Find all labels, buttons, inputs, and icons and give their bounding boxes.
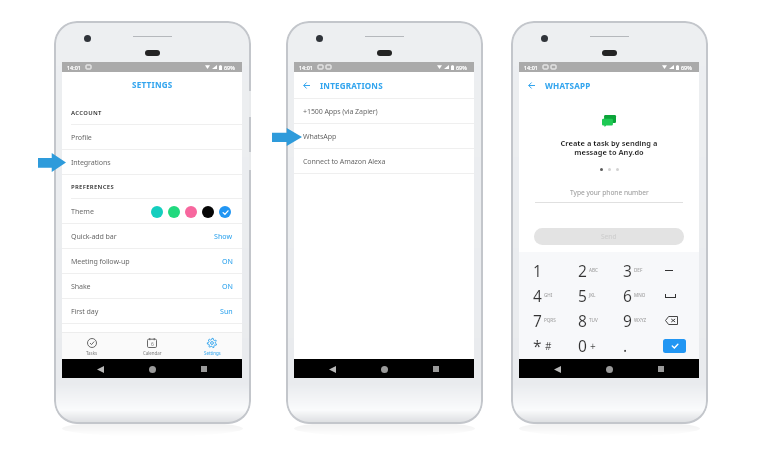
staticText: 14:01 — [524, 64, 538, 71]
button[interactable]: Back — [95, 364, 105, 374]
staticText: Profile — [71, 132, 92, 142]
staticText: 14:01 — [299, 64, 313, 71]
staticText: WXYZ — [634, 317, 647, 323]
staticText: SETTINGS — [132, 79, 173, 90]
staticText: Tasks — [86, 350, 98, 356]
staticText: 6 — [623, 285, 632, 306]
staticText: Show — [214, 231, 233, 241]
button[interactable]: Back — [302, 81, 311, 90]
button[interactable]: dash — [654, 258, 699, 283]
staticText: GHI — [544, 292, 553, 298]
staticText: 7 — [533, 310, 542, 331]
button[interactable]: Back — [327, 364, 337, 374]
button[interactable]: 9 — [609, 308, 654, 333]
button[interactable] — [185, 206, 197, 218]
button[interactable]: Home — [379, 364, 389, 374]
button[interactable]: Back — [527, 81, 536, 90]
button[interactable]: Home — [604, 364, 614, 374]
staticText: Meeting follow-up — [71, 256, 130, 266]
staticText: 6 — [151, 341, 154, 348]
staticText: Shake — [71, 281, 91, 291]
staticText: Sun — [220, 306, 233, 316]
staticText: 69% — [681, 64, 692, 71]
staticText: WhatsApp — [303, 131, 337, 141]
staticText: Calendar — [143, 350, 162, 356]
button[interactable]: WhatsApp — [294, 124, 474, 149]
staticText: ON — [222, 256, 233, 266]
staticText: + — [590, 339, 596, 353]
staticText: Theme — [71, 206, 94, 216]
button[interactable]: Connect to Amazon Alexa — [294, 149, 474, 174]
button[interactable]: 8 — [564, 308, 609, 333]
staticText: 3 — [623, 260, 632, 281]
button[interactable]: 6 — [609, 283, 654, 308]
button[interactable]: . — [609, 333, 654, 358]
staticText: MNO — [634, 292, 646, 298]
staticText: 69% — [224, 64, 235, 71]
button[interactable]: 7 — [519, 308, 564, 333]
staticText: 0 — [578, 335, 587, 356]
staticText: ACCOUNT — [71, 109, 102, 117]
staticText: DEF — [634, 267, 643, 273]
button[interactable]: space — [654, 283, 699, 308]
button[interactable]: Back — [552, 364, 562, 374]
button[interactable]: Confirm — [654, 333, 699, 358]
staticText: 8 — [578, 310, 587, 331]
staticText: WHATSAPP — [545, 80, 591, 91]
staticText: 9 — [623, 310, 632, 331]
staticText: . — [623, 335, 628, 356]
button[interactable]: Meeting follow-up — [62, 249, 242, 274]
staticText: 2 — [578, 260, 587, 281]
button[interactable]: 5 — [564, 283, 609, 308]
staticText: Quick-add bar — [71, 231, 117, 241]
staticText: Integrations — [71, 157, 111, 167]
button[interactable]: Quick-add bar — [62, 224, 242, 249]
staticText: * — [533, 335, 542, 356]
staticText: 4 — [533, 285, 542, 306]
staticText: Create a task by sending a message to An… — [519, 138, 699, 157]
button[interactable] — [219, 206, 231, 218]
staticText: First day — [71, 306, 99, 316]
button[interactable]: 2 — [564, 258, 609, 283]
button[interactable]: Integrations — [62, 150, 242, 175]
button[interactable]: Profile — [62, 125, 242, 150]
button[interactable]: Shake — [62, 274, 242, 299]
button[interactable]: Send — [534, 228, 684, 245]
button[interactable]: del — [654, 308, 699, 333]
button[interactable] — [151, 206, 163, 218]
button[interactable]: First day — [62, 299, 242, 324]
button[interactable]: 3 — [609, 258, 654, 283]
button[interactable]: Recents — [431, 364, 441, 374]
button[interactable]: Recents — [199, 364, 209, 374]
button[interactable]: 1 — [519, 258, 564, 283]
staticText: 1 — [533, 260, 542, 281]
staticText: INTEGRATIONS — [320, 80, 383, 91]
staticText: Connect to Amazon Alexa — [303, 156, 386, 166]
button[interactable]: 0 — [564, 333, 609, 358]
staticText: 69% — [456, 64, 467, 71]
staticText: PREFERENCES — [71, 183, 114, 191]
staticText: Send — [601, 232, 617, 241]
button[interactable]: Home — [147, 364, 157, 374]
button[interactable]: +1500 Apps (via Zapier) — [294, 99, 474, 124]
staticText: TUV — [589, 317, 598, 323]
button[interactable]: Recents — [656, 364, 666, 374]
staticText: +1500 Apps (via Zapier) — [303, 106, 378, 116]
button[interactable]: * — [519, 333, 564, 358]
staticText: 14:01 — [67, 64, 81, 71]
staticText: ABC — [589, 267, 598, 273]
staticText: PQRS — [544, 317, 556, 323]
staticText: Type your phone number — [570, 188, 649, 197]
button[interactable]: 4 — [519, 283, 564, 308]
button[interactable] — [168, 206, 180, 218]
button[interactable] — [202, 206, 214, 218]
staticText: 5 — [578, 285, 587, 306]
button[interactable]: Settings — [182, 334, 242, 359]
staticText: ON — [222, 281, 233, 291]
button[interactable]: 6 — [122, 334, 182, 359]
staticText: JKL — [589, 292, 596, 298]
button[interactable]: Theme — [62, 199, 242, 224]
staticText: Settings — [204, 350, 221, 356]
button[interactable]: Tasks — [62, 334, 122, 359]
staticText: # — [545, 339, 552, 353]
